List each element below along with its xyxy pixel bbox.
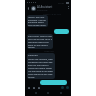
button[interactable]: Navigate xyxy=(34,91,38,95)
button[interactable]: Navigate xyxy=(59,91,63,95)
button[interactable] xyxy=(54,29,69,34)
staticText: online now xyxy=(37,9,48,11)
staticText: Let me know if you want more detail on a… xyxy=(28,70,54,75)
button[interactable]: Voice input xyxy=(66,86,69,89)
staticText: and run the build to check the output fo… xyxy=(28,64,54,69)
button[interactable]: Attachment xyxy=(37,86,40,89)
button[interactable]: Hello! I am your assistant. Ask me anyth… xyxy=(27,15,48,27)
staticText: Good? xyxy=(28,76,35,78)
staticText: Today 10:24 AM xyxy=(43,12,61,15)
staticText: 10:26 AM xyxy=(44,50,54,53)
button[interactable]: Send xyxy=(61,86,64,89)
staticText: 12:31 xyxy=(58,1,65,4)
button[interactable]: Navigate xyxy=(46,91,50,95)
button[interactable]: Attachment xyxy=(27,86,30,89)
staticText: AI Assistant xyxy=(37,5,53,9)
button[interactable]: More options xyxy=(66,6,70,10)
button[interactable]: Attachment xyxy=(32,86,35,89)
staticText: your project and I will help you out tod… xyxy=(28,24,47,26)
button[interactable]: Back xyxy=(26,6,31,11)
staticText: few quick steps that work on any recent … xyxy=(28,41,52,48)
staticText: Sure thing. Here is how you can set that… xyxy=(28,35,52,40)
staticText: Install the runtime, then configure the … xyxy=(28,58,54,63)
staticText: Hello! I am your assistant. Ask me anyth… xyxy=(28,16,47,23)
button[interactable] xyxy=(40,80,67,85)
staticText: Summary xyxy=(28,54,38,57)
button[interactable]: Summary xyxy=(27,53,55,79)
button[interactable]: Sure thing. Here is how you can set that… xyxy=(27,34,53,49)
